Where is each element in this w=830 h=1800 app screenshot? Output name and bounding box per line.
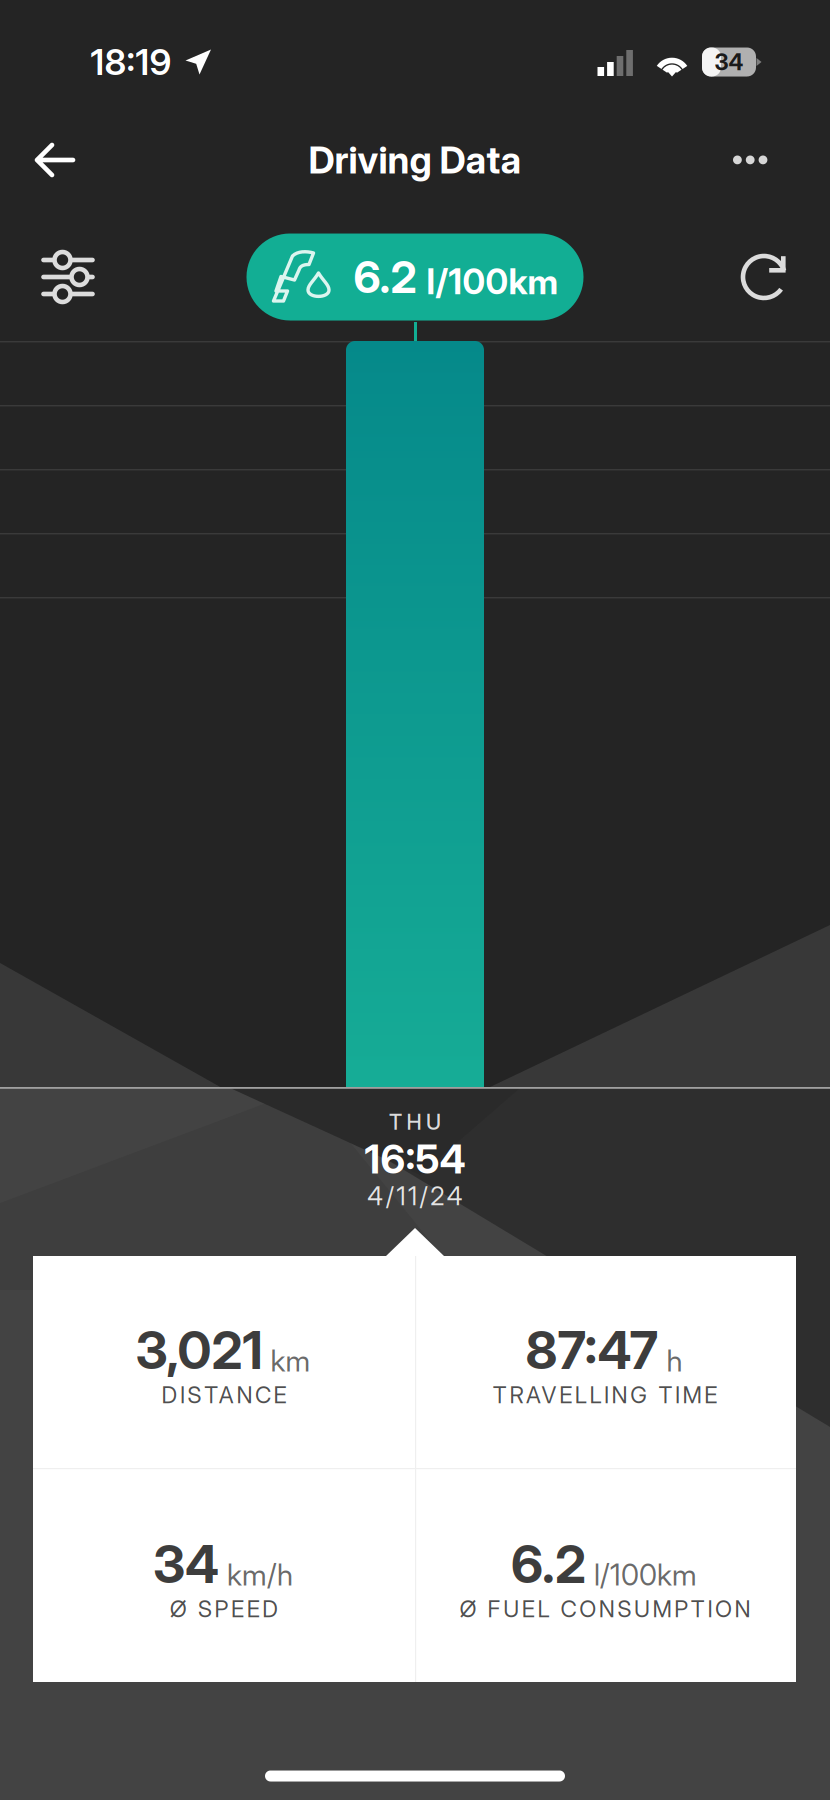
staticText: Driving Data bbox=[308, 137, 521, 183]
staticText: 34 bbox=[714, 48, 743, 76]
staticText: 6.2 bbox=[353, 250, 416, 304]
staticText: l/100km bbox=[594, 1557, 697, 1592]
staticText: 34 bbox=[153, 1532, 219, 1595]
staticText: THU bbox=[389, 1109, 441, 1135]
button[interactable]: Refresh bbox=[718, 230, 812, 324]
staticText: DISTANCE bbox=[161, 1381, 287, 1409]
button[interactable]: Filter bbox=[21, 230, 115, 324]
button[interactable]: Back bbox=[11, 116, 99, 204]
staticText: Ø FUEL CONSUMPTION bbox=[459, 1595, 751, 1623]
staticText: km bbox=[270, 1343, 310, 1378]
button[interactable]: 6.2 bbox=[246, 233, 583, 320]
staticText: l/100km bbox=[426, 261, 558, 303]
button[interactable]: More options bbox=[706, 116, 794, 204]
staticText: Ø SPEED bbox=[170, 1595, 278, 1623]
staticText: km/h bbox=[227, 1557, 293, 1592]
staticText: 6.2 bbox=[511, 1532, 586, 1595]
staticText: 4/11/24 bbox=[367, 1181, 463, 1211]
staticText: 3,021 bbox=[135, 1318, 262, 1381]
staticText: TRAVELLING TIME bbox=[493, 1381, 717, 1409]
staticText: 18:19 bbox=[90, 40, 171, 84]
staticText: 87:47 bbox=[525, 1318, 658, 1381]
staticText: h bbox=[666, 1343, 682, 1378]
staticText: 16:54 bbox=[364, 1135, 465, 1183]
